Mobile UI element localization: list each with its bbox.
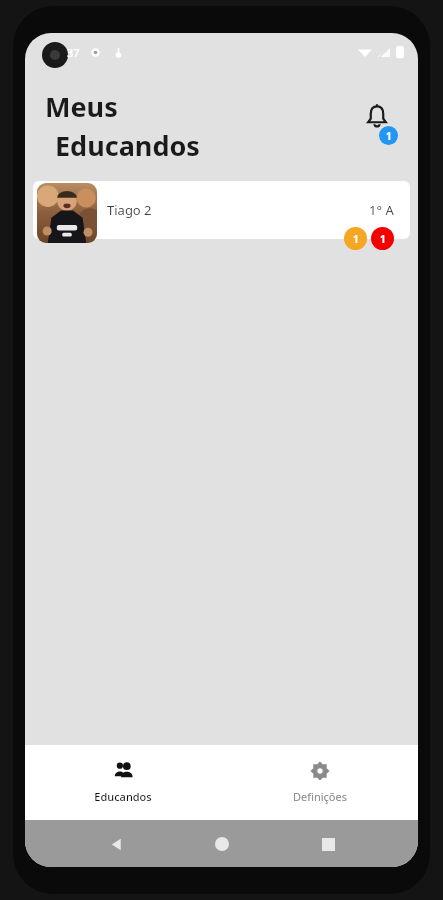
staticText: 1° A xyxy=(369,201,394,219)
button[interactable]: Back xyxy=(98,827,132,861)
staticText: Educandos xyxy=(55,127,200,164)
staticText: 1 xyxy=(353,232,359,246)
button[interactable]: Educandos xyxy=(25,745,221,820)
button[interactable]: 1 xyxy=(371,227,394,250)
staticText: Meus xyxy=(45,88,118,125)
button[interactable]: Definições xyxy=(221,745,418,820)
button[interactable]: Notificações xyxy=(354,103,400,149)
button[interactable]: Recents xyxy=(311,827,345,861)
staticText: 37 xyxy=(67,45,80,60)
staticText: 1 xyxy=(380,232,386,246)
button[interactable]: 1 xyxy=(344,227,367,250)
staticText: Tiago 2 xyxy=(107,201,152,219)
staticText: 1 xyxy=(386,129,392,143)
staticText: Definições xyxy=(293,789,347,804)
staticText: Educandos xyxy=(94,789,152,804)
button[interactable]: Home xyxy=(205,827,239,861)
button[interactable]: Tiago 2 xyxy=(33,181,410,239)
